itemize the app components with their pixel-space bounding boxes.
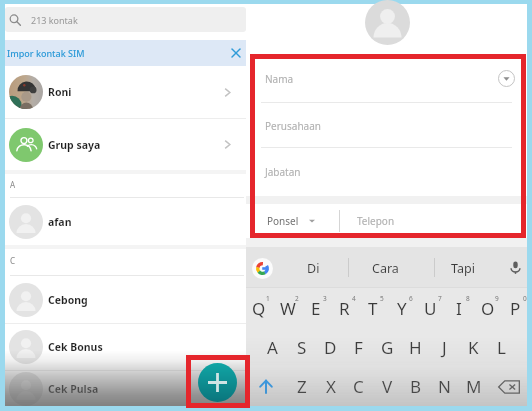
button[interactable]: D <box>316 328 345 367</box>
staticText: Ponsel <box>267 214 299 228</box>
staticText: Grup saya <box>48 138 101 152</box>
button[interactable]: J <box>430 328 459 367</box>
button[interactable]: T <box>358 288 387 328</box>
staticText: F <box>354 336 363 359</box>
staticText: P <box>510 297 521 320</box>
staticText: J <box>442 336 447 359</box>
button[interactable]: Y <box>387 288 416 328</box>
staticText: 9 <box>495 294 499 303</box>
button[interactable]: Impor kontak SIM <box>5 40 246 66</box>
button[interactable]: Ponsel <box>246 204 339 238</box>
staticText: Cebong <box>48 293 88 307</box>
button[interactable]: Perusahaan <box>246 103 527 148</box>
staticText: 0 <box>523 294 527 303</box>
button[interactable]: 213 kontak <box>5 7 246 32</box>
button[interactable]: R <box>330 288 359 328</box>
button[interactable]: M <box>459 367 488 406</box>
staticText: Z <box>297 375 307 398</box>
staticText: 3 <box>323 294 327 303</box>
staticText: Cek Bonus <box>48 340 103 354</box>
staticText: N <box>438 375 451 398</box>
button[interactable]: Jabatan <box>246 148 527 196</box>
button[interactable]: X <box>316 367 345 406</box>
staticText: L <box>497 336 506 359</box>
button[interactable]: Backspace <box>492 367 526 406</box>
button[interactable]: W <box>273 288 302 328</box>
staticText: Cara <box>372 260 399 277</box>
staticText: O <box>481 297 495 320</box>
staticText: 6 <box>409 294 413 303</box>
button[interactable]: L <box>487 328 516 367</box>
button[interactable]: afan <box>5 198 246 245</box>
button[interactable]: Q <box>244 288 273 328</box>
staticText: G <box>381 336 394 359</box>
button[interactable]: S <box>287 328 316 367</box>
button[interactable]: Cek Pulsa <box>5 371 246 406</box>
button[interactable]: I <box>444 288 473 328</box>
staticText: 2 <box>295 294 299 303</box>
staticText: 213 kontak <box>31 14 78 26</box>
staticText: A <box>10 179 16 190</box>
button[interactable]: O <box>473 288 502 328</box>
button[interactable]: Shift <box>251 367 280 406</box>
staticText: R <box>339 297 350 320</box>
button[interactable]: Di <box>285 247 341 287</box>
button[interactable]: F <box>344 328 373 367</box>
staticText: C <box>353 375 364 398</box>
staticText: 8 <box>466 294 470 303</box>
button[interactable]: Grup saya <box>5 119 246 170</box>
button[interactable]: Cek Bonus <box>5 324 246 370</box>
button[interactable]: Tapi <box>435 247 491 287</box>
staticText: Tapi <box>451 260 475 277</box>
button[interactable]: E <box>301 288 330 328</box>
staticText: I <box>456 297 462 320</box>
button[interactable]: Roni <box>5 66 246 118</box>
button[interactable]: K <box>459 328 488 367</box>
button[interactable]: G <box>373 328 402 367</box>
staticText: A <box>267 336 278 359</box>
staticText: E <box>311 297 321 320</box>
button[interactable]: U <box>416 288 445 328</box>
button[interactable]: C <box>344 367 373 406</box>
staticText: Y <box>397 297 407 320</box>
staticText: Roni <box>48 85 72 99</box>
button[interactable]: V <box>373 367 402 406</box>
button[interactable]: Nama <box>246 54 527 103</box>
button[interactable]: Cara <box>357 247 413 287</box>
staticText: K <box>468 336 479 359</box>
staticText: Jabatan <box>265 165 301 179</box>
staticText: B <box>410 375 422 398</box>
staticText: 1 <box>266 294 270 303</box>
staticText: Di <box>307 260 320 277</box>
staticText: 4 <box>352 294 356 303</box>
button[interactable]: Z <box>287 367 316 406</box>
button[interactable]: Add contact <box>198 363 237 402</box>
staticText: Perusahaan <box>265 119 321 133</box>
button[interactable]: P <box>501 288 530 328</box>
staticText: W <box>280 297 296 320</box>
staticText: H <box>409 336 422 359</box>
button[interactable]: Contact photo <box>365 0 410 45</box>
staticText: C <box>10 255 16 266</box>
staticText: Nama <box>265 72 294 86</box>
button[interactable]: N <box>430 367 459 406</box>
staticText: M <box>466 375 482 398</box>
staticText: U <box>424 297 437 320</box>
button[interactable]: H <box>401 328 430 367</box>
button[interactable]: Google search <box>252 258 273 279</box>
staticText: 7 <box>438 294 442 303</box>
staticText: X <box>326 375 336 398</box>
button[interactable]: Close <box>228 45 244 61</box>
staticText: T <box>368 297 378 320</box>
staticText: afan <box>48 215 72 229</box>
staticText: 5 <box>380 294 384 303</box>
button[interactable]: Expand name fields <box>498 70 515 87</box>
staticText: Impor kontak SIM <box>7 47 85 59</box>
button[interactable]: B <box>401 367 430 406</box>
staticText: D <box>324 336 337 359</box>
button[interactable]: A <box>258 328 287 367</box>
staticText: V <box>382 375 393 398</box>
staticText: S <box>297 336 307 359</box>
button[interactable]: Voice input <box>504 247 526 287</box>
button[interactable]: Cebong <box>5 276 246 323</box>
